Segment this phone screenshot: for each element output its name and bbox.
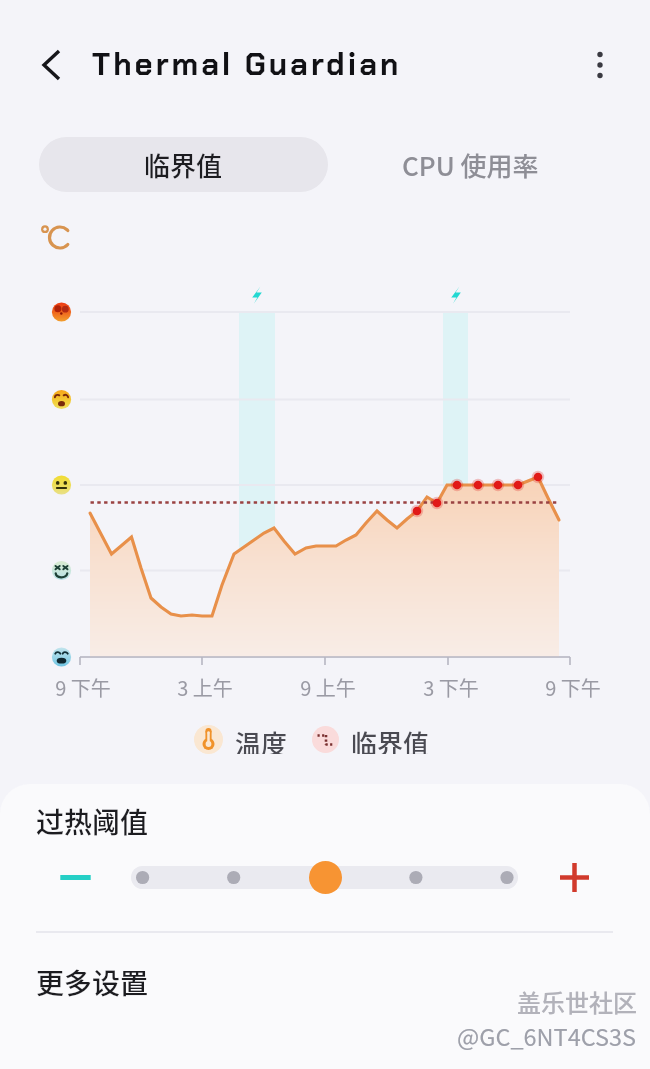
staticText: 9 下午 [545,673,601,702]
button[interactable]: 临界值 [39,137,328,192]
staticText: 3 上午 [177,673,233,702]
staticText: 3 下午 [423,673,479,702]
staticText: Thermal Guardian [92,44,402,84]
button[interactable]: Back [26,41,74,89]
staticText: 9 上午 [300,673,356,702]
staticText: 临界值 [144,146,223,184]
button[interactable]: 温度 [194,724,288,754]
staticText: 临界值 [351,724,430,754]
button[interactable]: 临界值 [312,724,430,754]
button[interactable]: More options [576,41,624,89]
button[interactable]: CPU 使用率 [350,137,590,192]
staticText: CPU 使用率 [402,146,539,184]
staticText: @GC_6NT4CS3S [457,1019,637,1053]
staticText: 温度 [235,724,288,754]
staticText: 盖乐世社区 [517,984,637,1019]
staticText: 过热阈值 [36,801,149,842]
button[interactable]: Threshold slider [131,866,518,889]
button[interactable]: Increase threshold [552,855,597,900]
button[interactable]: Threshold value [309,861,342,894]
button[interactable]: Decrease threshold [53,855,98,900]
button[interactable]: 更多设置 [36,962,149,1003]
staticText: 9 下午 [55,673,111,702]
